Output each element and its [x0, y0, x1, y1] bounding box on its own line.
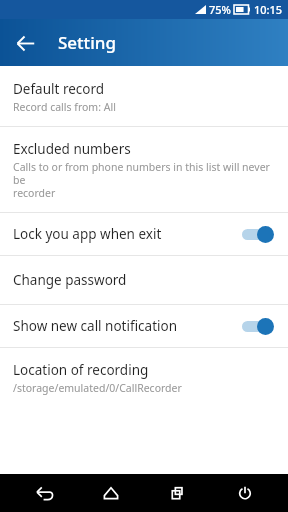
button[interactable]: Lock you app when exit — [0, 213, 288, 255]
staticText: Lock you app when exit — [13, 225, 240, 243]
button[interactable]: Home — [77, 474, 144, 512]
staticText: 75% — [209, 2, 231, 17]
staticText: Default record — [13, 80, 105, 98]
staticText: 10:15 — [254, 2, 283, 17]
staticText: Change password — [13, 271, 127, 289]
button[interactable]: Power — [211, 474, 278, 512]
button[interactable]: Default record — [0, 66, 288, 126]
staticText: Show new call notification — [13, 317, 240, 335]
button[interactable]: Recent apps — [144, 474, 211, 512]
button[interactable]: Show new call notification — [0, 305, 288, 347]
staticText: Excluded numbers — [13, 140, 131, 158]
button[interactable]: Excluded numbers — [0, 127, 288, 212]
button[interactable]: Back — [10, 474, 77, 512]
button[interactable]: Location of recording — [0, 348, 288, 407]
staticText: Location of recording — [13, 361, 149, 379]
staticText: /storage/emulated/0/CallRecorder — [13, 381, 182, 395]
button[interactable]: Back — [8, 26, 42, 60]
staticText: Setting — [58, 31, 116, 54]
staticText: Calls to or from phone numbers in this l… — [13, 160, 275, 200]
button[interactable]: Change password — [0, 256, 288, 304]
staticText: Record calls from: All — [13, 100, 116, 114]
